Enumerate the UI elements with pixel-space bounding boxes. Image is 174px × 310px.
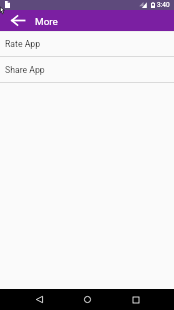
- button[interactable]: Recent apps: [121, 289, 151, 310]
- staticText: Rate App: [5, 39, 41, 49]
- staticText: More: [35, 16, 58, 28]
- button[interactable]: Rate App: [0, 31, 174, 57]
- button[interactable]: Back: [24, 289, 54, 310]
- button[interactable]: Home: [72, 289, 102, 310]
- button[interactable]: Share App: [0, 57, 174, 83]
- staticText: Share App: [5, 65, 45, 75]
- button[interactable]: Back: [7, 10, 28, 31]
- staticText: 3:40: [157, 1, 170, 9]
